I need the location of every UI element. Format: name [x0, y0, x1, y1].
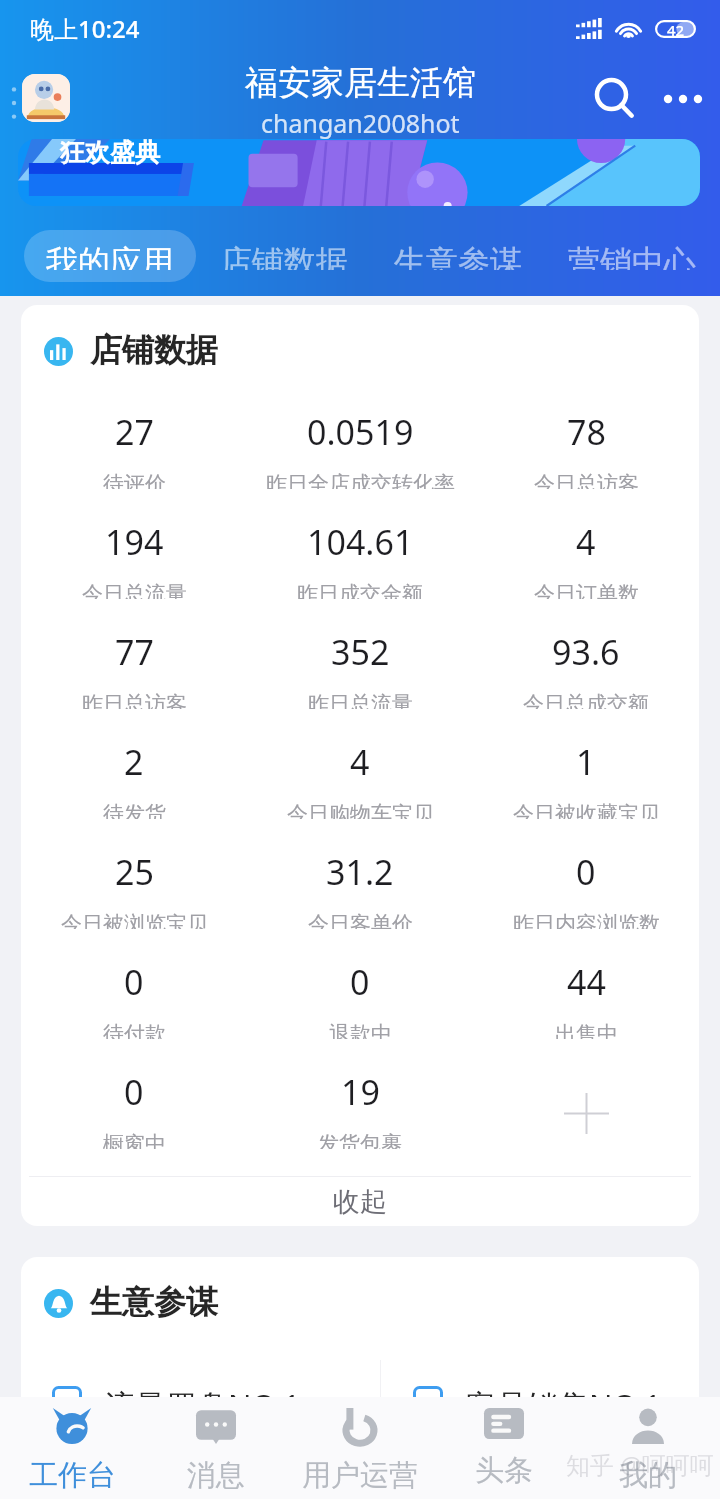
- button[interactable]: 店铺数据: [198, 230, 370, 282]
- staticText: 0: [576, 849, 596, 895]
- staticText: 0: [124, 1069, 144, 1115]
- staticText: 今日客单价: [308, 911, 413, 929]
- staticText: 2: [124, 739, 144, 785]
- button[interactable]: 2: [21, 709, 247, 819]
- staticText: 今日总成交额: [523, 691, 649, 709]
- button[interactable]: 25: [21, 819, 247, 929]
- button[interactable]: 31.2: [247, 819, 473, 929]
- staticText: 78: [567, 409, 606, 455]
- staticText: 店铺数据: [220, 242, 348, 270]
- staticText: 生意参谋: [394, 242, 522, 270]
- button[interactable]: 44: [473, 929, 699, 1039]
- button[interactable]: 客品销售NO.1: [413, 1384, 662, 1426]
- staticText: 194: [105, 519, 164, 565]
- button[interactable]: 78: [473, 379, 699, 489]
- staticText: 橱窗中: [103, 1131, 166, 1149]
- staticText: 0: [350, 959, 370, 1005]
- staticText: 今日被收藏宝贝: [513, 801, 660, 819]
- button[interactable]: 0: [21, 929, 247, 1039]
- button[interactable]: 77: [21, 599, 247, 709]
- button[interactable]: 0: [21, 1039, 247, 1149]
- button[interactable]: 狂欢盛典: [18, 139, 700, 206]
- button[interactable]: 352: [247, 599, 473, 709]
- staticText: 19: [341, 1069, 380, 1115]
- button[interactable]: 19: [247, 1039, 473, 1149]
- staticText: 消息: [187, 1457, 245, 1494]
- button[interactable]: 27: [21, 379, 247, 489]
- staticText: 今日总访客: [534, 471, 639, 489]
- staticText: 昨日全店成交转化率: [266, 471, 455, 489]
- staticText: 今日被浏览宝贝: [61, 911, 208, 929]
- staticText: 4: [576, 519, 596, 565]
- staticText: 27: [115, 409, 154, 455]
- button[interactable]: More options: [656, 72, 710, 126]
- staticText: 我的: [619, 1457, 677, 1494]
- button[interactable]: 1: [473, 709, 699, 819]
- staticText: 待评价: [103, 471, 166, 489]
- staticText: changan2008hot: [261, 106, 460, 140]
- staticText: 昨日总访客: [82, 691, 187, 709]
- button[interactable]: 194: [21, 489, 247, 599]
- button[interactable]: 4: [247, 709, 473, 819]
- staticText: 营销中心: [568, 242, 696, 270]
- staticText: 客品销售NO.1: [465, 1384, 662, 1426]
- button[interactable]: 0: [247, 929, 473, 1039]
- button[interactable]: 消息: [144, 1397, 288, 1499]
- staticText: 狂欢盛典: [60, 139, 160, 168]
- button[interactable]: Shop avatar: [22, 74, 70, 122]
- staticText: 4: [350, 739, 370, 785]
- button[interactable]: 4: [473, 489, 699, 599]
- staticText: 昨日内容浏览数: [513, 911, 660, 929]
- staticText: 今日购物车宝贝: [287, 801, 434, 819]
- staticText: 0: [124, 959, 144, 1005]
- staticText: 昨日成交金额: [297, 581, 423, 599]
- staticText: 昨日总流量: [308, 691, 413, 709]
- staticText: 待付款: [103, 1021, 166, 1039]
- staticText: 352: [331, 629, 390, 675]
- button[interactable]: Search: [588, 72, 642, 126]
- staticText: 福安家居生活馆: [245, 62, 476, 104]
- staticText: 头条: [475, 1452, 533, 1489]
- button[interactable]: Add: [473, 1039, 699, 1149]
- staticText: 工作台: [29, 1457, 116, 1494]
- staticText: 用户运营: [302, 1457, 418, 1494]
- staticText: 知乎 @呵呵呵: [566, 1448, 714, 1481]
- button[interactable]: 0.0519: [247, 379, 473, 489]
- staticText: 出售中: [555, 1021, 618, 1039]
- button[interactable]: 收起: [21, 1177, 699, 1226]
- staticText: 发货包裹: [318, 1131, 402, 1149]
- staticText: 店铺数据: [90, 330, 218, 370]
- button[interactable]: 流量罗盘NO.1: [52, 1384, 301, 1426]
- staticText: 晚上10:24: [30, 12, 140, 45]
- button[interactable]: 我的应用: [24, 230, 196, 282]
- staticText: 流量罗盘NO.1: [104, 1384, 301, 1426]
- button[interactable]: 头条: [432, 1397, 576, 1499]
- button[interactable]: 93.6: [473, 599, 699, 709]
- staticText: 93.6: [552, 629, 620, 675]
- staticText: 42: [667, 20, 685, 38]
- button[interactable]: 工作台: [0, 1397, 144, 1499]
- staticText: 我的应用: [46, 242, 174, 270]
- button[interactable]: 生意参谋: [372, 230, 544, 282]
- button[interactable]: 用户运营: [288, 1397, 432, 1499]
- staticText: 收起: [333, 1185, 387, 1219]
- staticText: 0.0519: [307, 409, 414, 455]
- staticText: 1: [576, 739, 596, 785]
- button[interactable]: 我的: [576, 1397, 720, 1499]
- staticText: 77: [115, 629, 154, 675]
- button[interactable]: 104.61: [247, 489, 473, 599]
- staticText: 退款中: [329, 1021, 392, 1039]
- staticText: 生意参谋: [90, 1282, 218, 1322]
- staticText: 今日订单数: [534, 581, 639, 599]
- staticText: 今日总流量: [82, 581, 187, 599]
- button[interactable]: 营销中心: [546, 230, 718, 282]
- staticText: 待发货: [103, 801, 166, 819]
- staticText: 44: [567, 959, 606, 1005]
- button[interactable]: 0: [473, 819, 699, 929]
- staticText: 25: [115, 849, 154, 895]
- staticText: 104.61: [307, 519, 414, 565]
- staticText: 31.2: [326, 849, 394, 895]
